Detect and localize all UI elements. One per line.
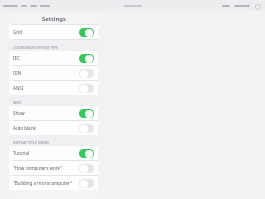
staticText: "How computers work" bbox=[13, 165, 77, 171]
button[interactable]: On bbox=[79, 109, 94, 118]
staticText: COORDINATE SYSTEM TYPE bbox=[13, 45, 59, 50]
button[interactable]: DIN bbox=[9, 66, 98, 80]
button[interactable]: On bbox=[79, 149, 94, 158]
staticText: Auto blank bbox=[13, 125, 77, 131]
button[interactable]: Run bbox=[40, 2, 50, 10]
button[interactable]: "Building a microcomputer" bbox=[9, 176, 98, 190]
staticText: Show bbox=[13, 110, 77, 116]
button[interactable]: Edit bbox=[222, 2, 230, 10]
button[interactable]: On bbox=[79, 28, 94, 37]
staticText: DIN bbox=[13, 70, 77, 76]
button[interactable]: Show bbox=[9, 106, 98, 120]
button[interactable]: ANSI bbox=[9, 81, 98, 95]
button[interactable]: Off bbox=[79, 84, 94, 93]
button[interactable]: More options bbox=[254, 3, 261, 10]
button[interactable]: Elements bbox=[234, 2, 250, 10]
button[interactable]: Auto blank bbox=[9, 121, 98, 135]
button[interactable]: List/3D bbox=[3, 2, 18, 10]
staticText: Grid bbox=[13, 29, 77, 35]
staticText: "Building a microcomputer" bbox=[13, 180, 77, 186]
button[interactable]: Off bbox=[79, 69, 94, 78]
button[interactable]: Tutorial bbox=[9, 146, 98, 160]
button[interactable]: Off bbox=[79, 124, 94, 133]
staticText: Settings bbox=[42, 15, 66, 23]
button[interactable]: Toolbar button bbox=[30, 2, 37, 10]
button[interactable]: Off bbox=[79, 179, 94, 188]
staticText: DISPLAY TITLE INSIDE bbox=[13, 140, 50, 145]
staticText: ANSI bbox=[13, 85, 77, 91]
button[interactable]: Off bbox=[79, 164, 94, 173]
staticText: IEC bbox=[13, 55, 77, 61]
button[interactable]: On bbox=[21, 2, 27, 10]
button[interactable]: Grid bbox=[9, 25, 98, 39]
staticText: Tutorial bbox=[13, 150, 77, 156]
button[interactable]: On bbox=[79, 54, 94, 63]
button[interactable]: "How computers work" bbox=[9, 161, 98, 175]
button[interactable]: IEC bbox=[9, 51, 98, 65]
staticText: MISC bbox=[13, 100, 22, 105]
